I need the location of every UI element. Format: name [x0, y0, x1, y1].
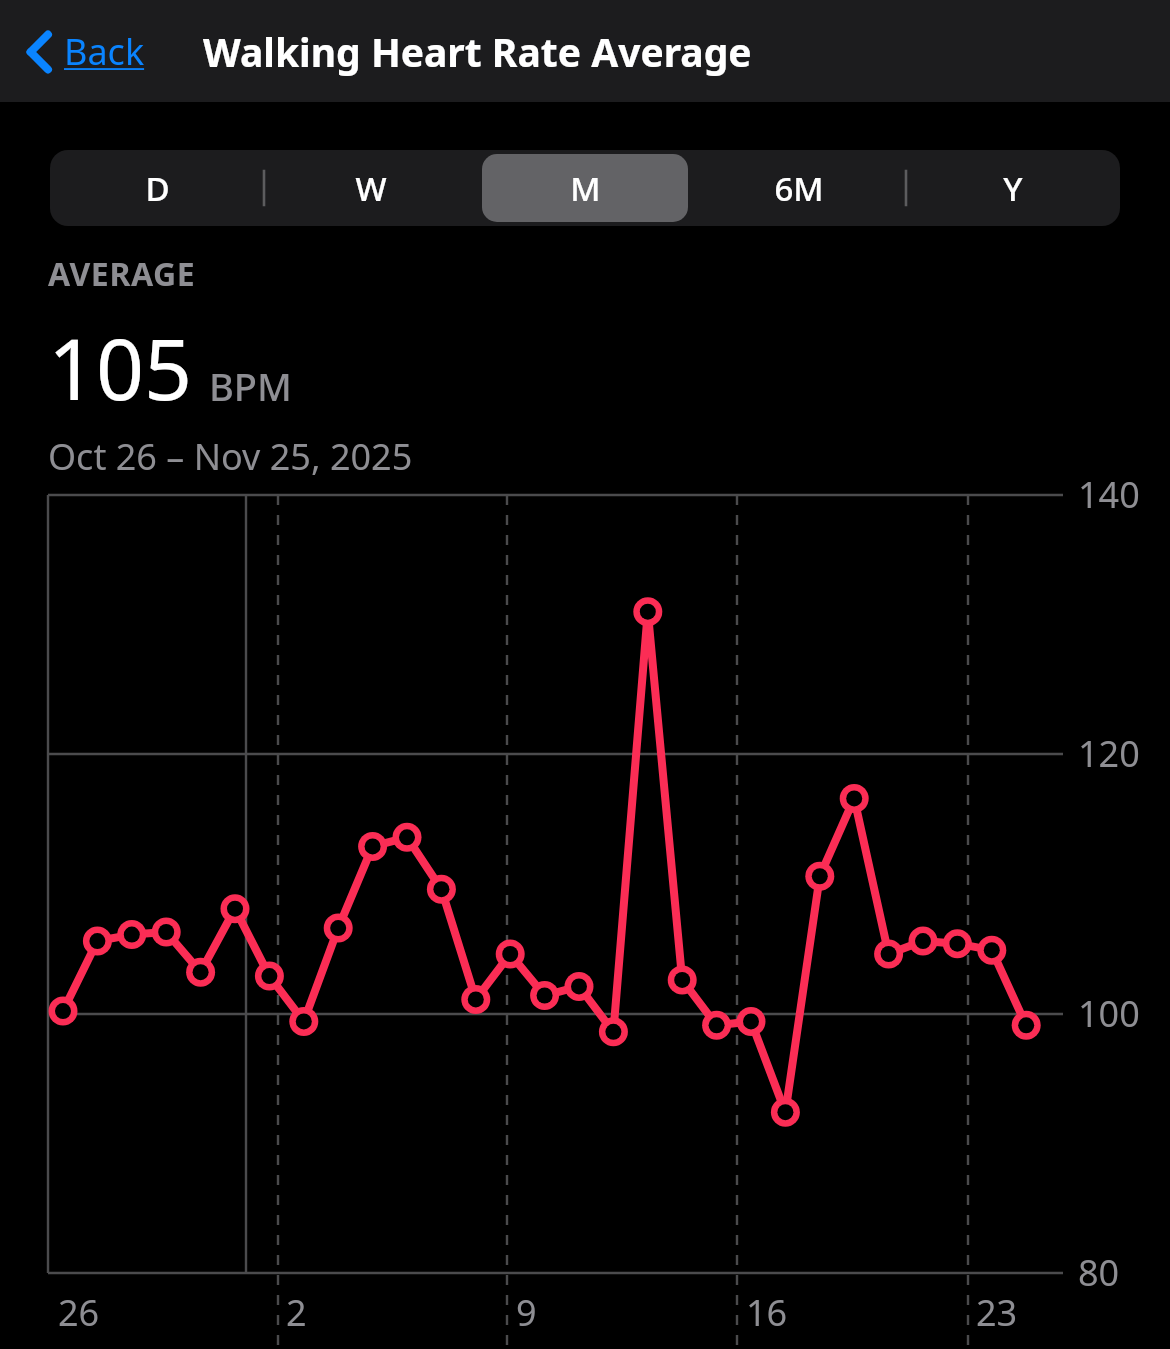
staticText: 80 [1078, 1248, 1120, 1297]
staticText: BPM [209, 360, 292, 412]
staticText: Oct 26 – Nov 25, 2025 [48, 432, 413, 481]
staticText: 120 [1078, 729, 1140, 778]
staticText: 140 [1078, 470, 1140, 519]
staticText: AVERAGE [48, 252, 196, 296]
button[interactable]: 6M [696, 154, 902, 222]
button[interactable]: Y [910, 154, 1116, 222]
button[interactable]: M [482, 154, 688, 222]
button[interactable]: D [54, 154, 260, 222]
staticText: Y [1003, 166, 1023, 211]
staticText: 100 [1078, 989, 1140, 1038]
staticText: 16 [746, 1288, 788, 1337]
staticText: Walking Heart Rate Average [203, 25, 752, 78]
staticText: Back [64, 27, 145, 76]
button[interactable]: W [268, 154, 474, 222]
other: Back [24, 29, 54, 75]
staticText: 2 [286, 1288, 307, 1337]
staticText: 6M [774, 166, 824, 211]
staticText: 26 [58, 1288, 100, 1337]
staticText: W [355, 166, 387, 211]
button[interactable]: Back [24, 27, 151, 76]
staticText: 23 [976, 1288, 1018, 1337]
staticText: D [145, 166, 170, 211]
staticText: M [570, 166, 601, 211]
staticText: 105 [48, 310, 193, 424]
staticText: 9 [516, 1288, 537, 1337]
